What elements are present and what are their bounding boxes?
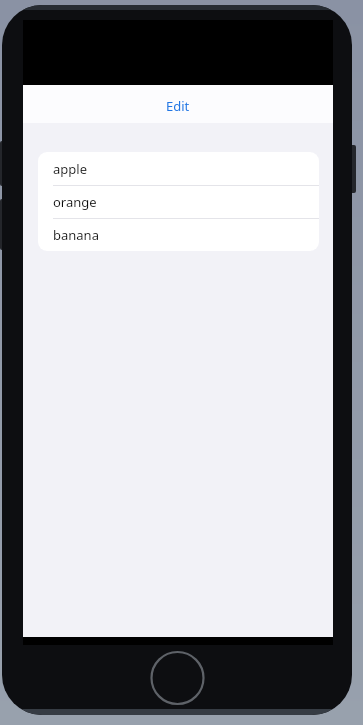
button[interactable]: orange bbox=[38, 185, 319, 218]
staticText: banana bbox=[53, 226, 99, 244]
button[interactable]: Edit bbox=[154, 89, 202, 123]
button[interactable]: apple bbox=[38, 152, 319, 185]
staticText: Edit bbox=[166, 97, 190, 115]
staticText: orange bbox=[53, 193, 97, 211]
staticText: apple bbox=[53, 160, 87, 178]
button[interactable]: banana bbox=[38, 218, 319, 251]
